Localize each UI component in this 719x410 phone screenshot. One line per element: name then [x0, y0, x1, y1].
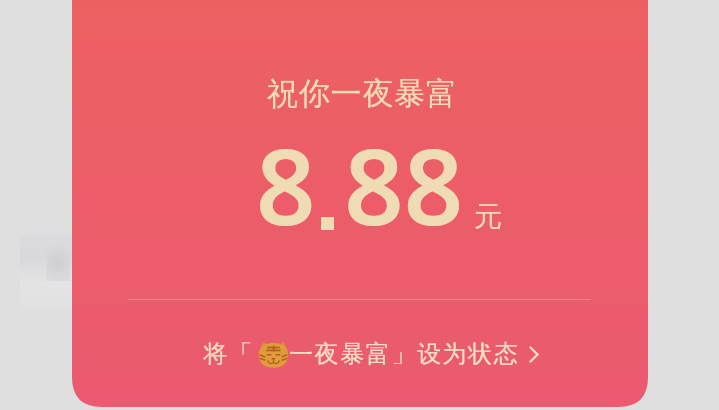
staticText: 8.88	[256, 114, 464, 256]
staticText: 将「	[203, 339, 255, 369]
other: Open	[529, 346, 539, 363]
staticText: 元	[474, 199, 502, 234]
staticText: 一夜暴富」设为状态	[289, 339, 520, 369]
other: Tiger face emoji	[258, 341, 289, 368]
button[interactable]: 将「	[189, 331, 553, 377]
staticText: 祝你一夜暴富	[267, 74, 458, 113]
